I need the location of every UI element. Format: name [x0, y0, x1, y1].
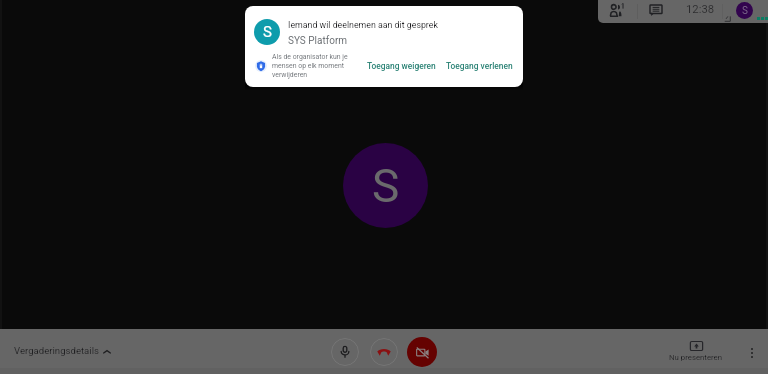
button[interactable]: Nu presenteren	[665, 337, 727, 365]
staticText: Iemand wil deelnemen aan dit gesprek	[288, 20, 438, 30]
staticText: Toegang weigeren	[367, 61, 436, 71]
button[interactable]: Account	[736, 2, 753, 19]
button[interactable]: Toegang weigeren	[363, 58, 440, 74]
staticText: Nu presenteren	[669, 353, 723, 362]
staticText: Vergaderingsdetails	[14, 345, 99, 356]
staticText: SYS Platform	[288, 35, 348, 47]
button[interactable]: Vergaderingsdetails	[9, 342, 116, 359]
button[interactable]: Leave call	[370, 338, 398, 366]
staticText: Als de organisator kun je mensen op elk …	[272, 53, 348, 79]
button[interactable]: Turn off camera	[407, 337, 437, 367]
button[interactable]: More options	[741, 342, 763, 364]
staticText: Toegang verlenen	[446, 61, 513, 71]
staticText: S	[742, 5, 748, 17]
button[interactable]: Mute microphone	[331, 338, 359, 366]
button[interactable]: Toegang verlenen	[442, 58, 517, 74]
button[interactable]: Participants	[607, 0, 626, 19]
button[interactable]: Chat	[646, 1, 665, 20]
staticText: 12:38	[686, 3, 715, 16]
staticText: S	[263, 23, 272, 41]
staticText: S	[372, 159, 400, 213]
